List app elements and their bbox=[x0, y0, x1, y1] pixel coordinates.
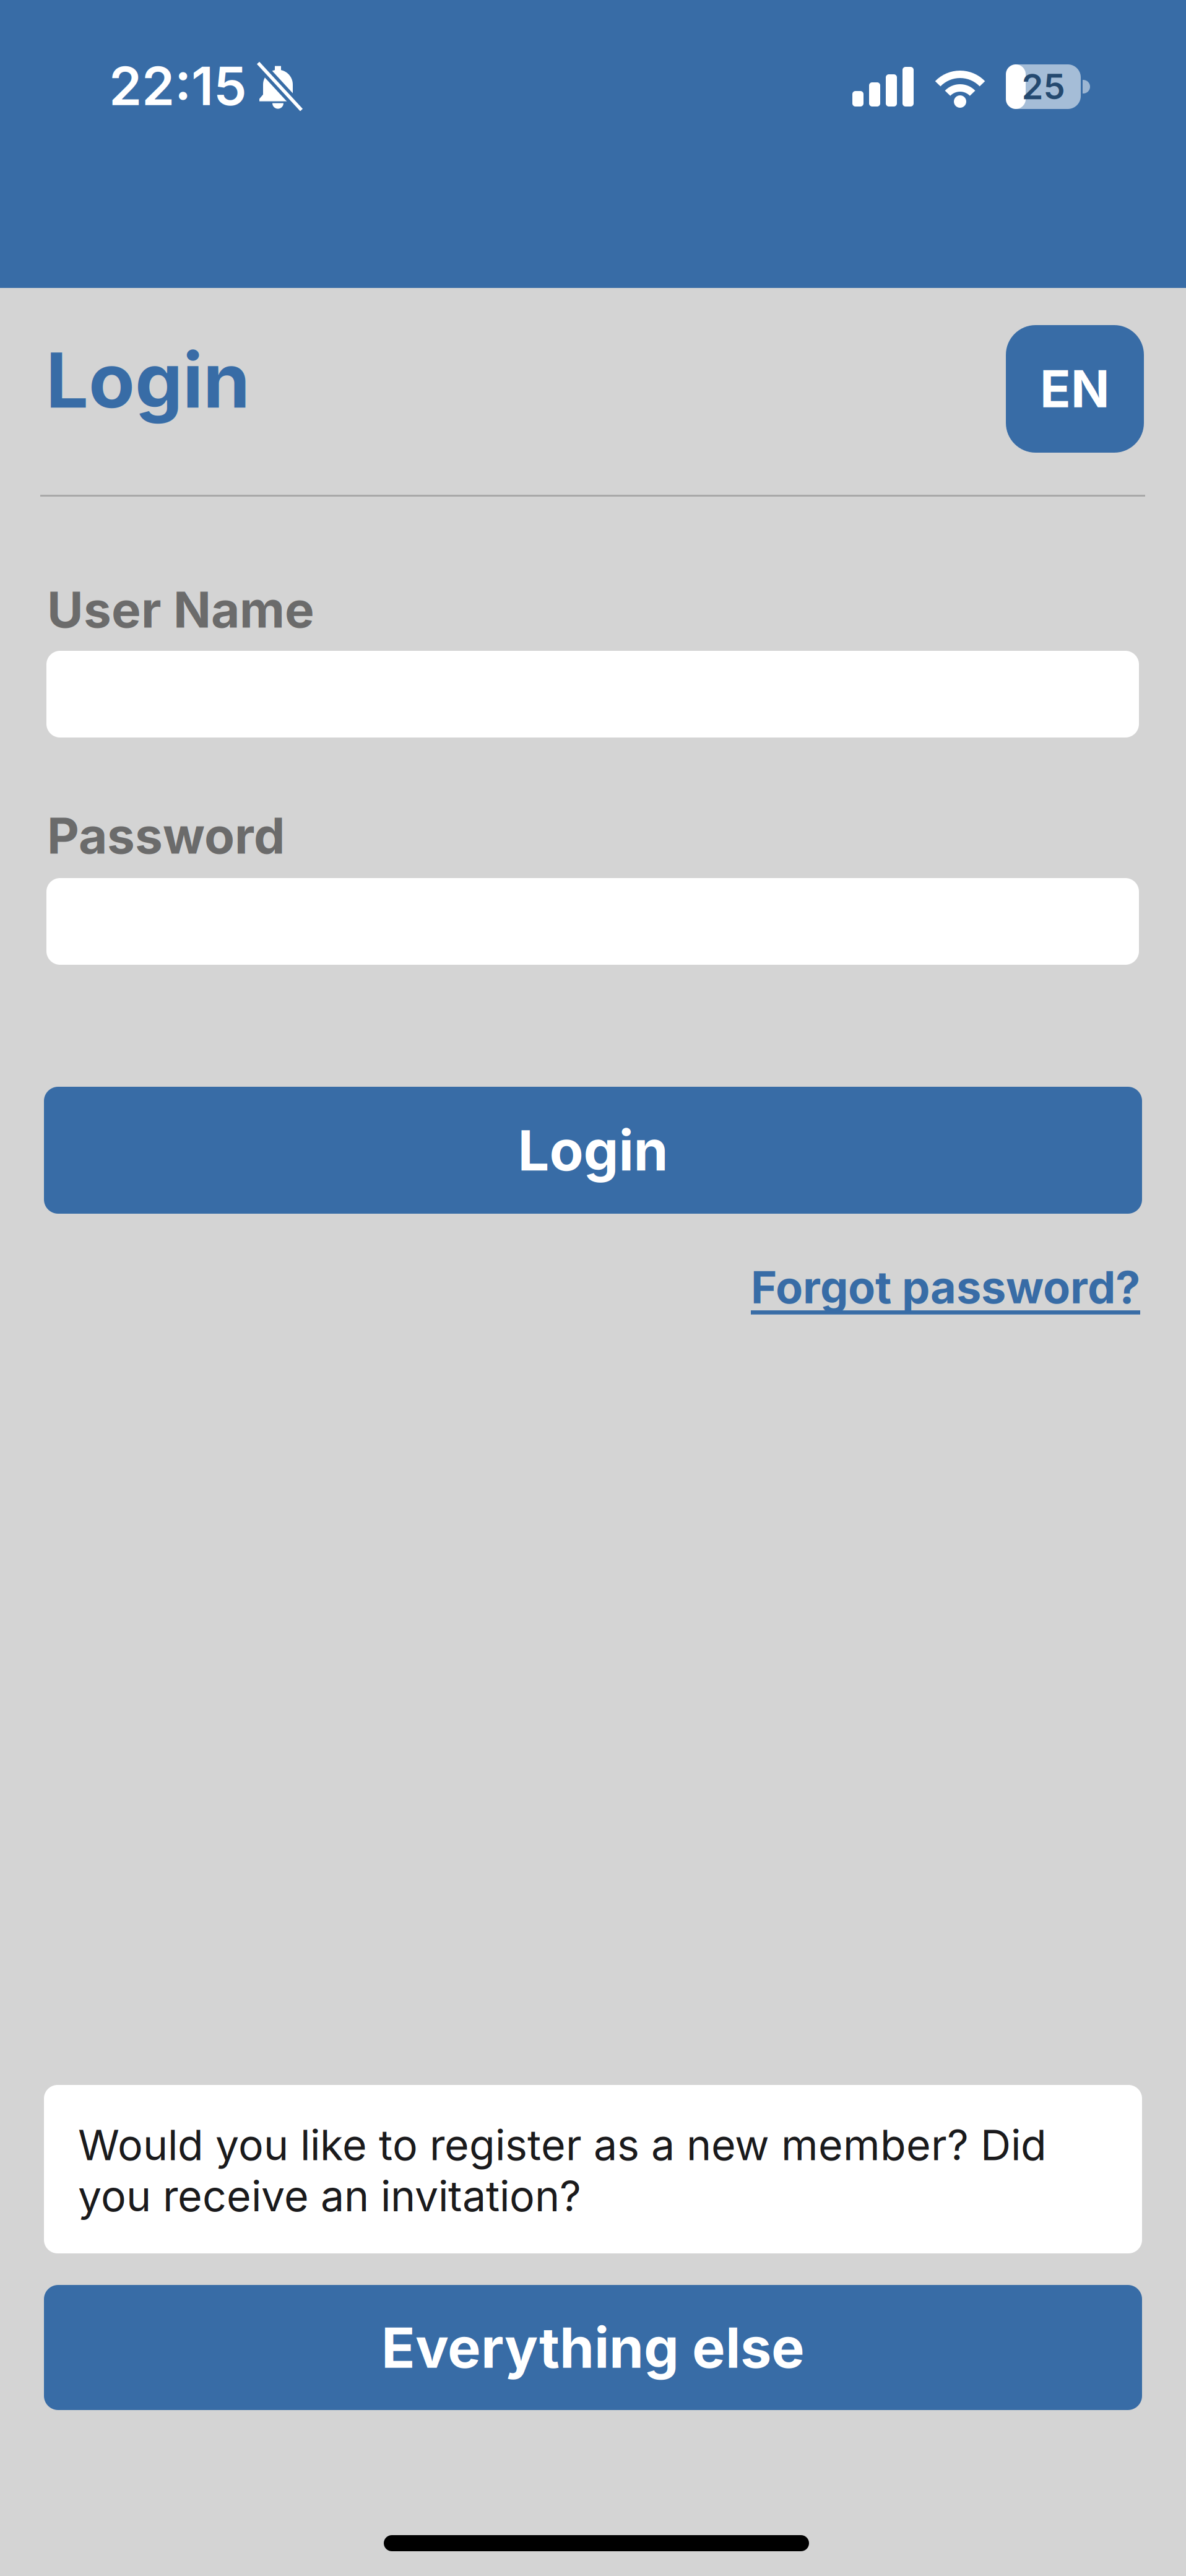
staticText: 25 bbox=[1022, 66, 1065, 108]
button[interactable]: Login bbox=[44, 1087, 1142, 1214]
button[interactable]: Password bbox=[46, 878, 1139, 965]
button[interactable]: Everything else bbox=[44, 2285, 1142, 2410]
staticText: Forgot password? bbox=[751, 1260, 1140, 1314]
staticText: Login bbox=[518, 1117, 668, 1184]
staticText: Would you like to register as a new memb… bbox=[78, 2119, 1047, 2221]
staticText: Everything else bbox=[381, 2314, 805, 2381]
staticText: Login bbox=[46, 334, 250, 426]
staticText: EN bbox=[1040, 358, 1110, 420]
staticText: User Name bbox=[47, 580, 314, 640]
button[interactable]: Language: English bbox=[1006, 325, 1144, 453]
staticText: 22:15 bbox=[109, 54, 247, 118]
button[interactable]: Forgot password? bbox=[751, 1260, 1140, 1314]
staticText: Password bbox=[47, 806, 285, 866]
